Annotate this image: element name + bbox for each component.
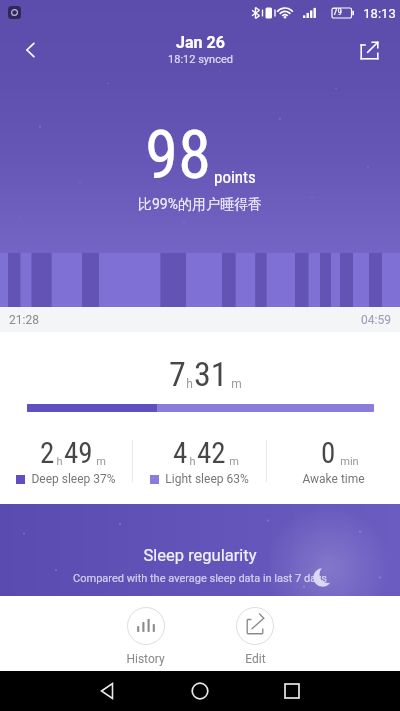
button[interactable]: View history bbox=[118, 605, 173, 668]
staticText: 18:12 synced bbox=[168, 53, 233, 66]
button[interactable]: Recents bbox=[272, 671, 312, 711]
button[interactable]: Back bbox=[88, 671, 128, 711]
staticText: 比99%的用户睡得香 bbox=[138, 196, 262, 214]
staticText: 7 bbox=[169, 354, 186, 394]
staticText: Compared with the average sleep data in … bbox=[73, 572, 327, 585]
button[interactable]: Sleep regularity bbox=[0, 504, 400, 596]
staticText: h bbox=[189, 455, 196, 468]
staticText: points bbox=[214, 167, 256, 187]
staticText: 31 bbox=[194, 354, 228, 394]
staticText: Jan 26 bbox=[176, 33, 225, 52]
staticText: 98 bbox=[145, 116, 212, 195]
staticText: m bbox=[96, 455, 106, 468]
staticText: History bbox=[126, 652, 165, 666]
staticText: m bbox=[231, 377, 242, 391]
staticText: 49 bbox=[64, 436, 93, 470]
staticText: 18:13 bbox=[363, 6, 396, 21]
staticText: Edit bbox=[245, 652, 266, 666]
staticText: 21:28 bbox=[9, 313, 39, 327]
staticText: 04:59 bbox=[361, 313, 391, 327]
button[interactable]: Back bbox=[8, 27, 54, 73]
button[interactable]: Share bbox=[346, 27, 392, 73]
staticText: h bbox=[56, 455, 63, 468]
staticText: 2 bbox=[40, 436, 55, 470]
staticText: 4 bbox=[173, 436, 188, 470]
button[interactable]: Home bbox=[180, 671, 220, 711]
staticText: Light sleep 63% bbox=[165, 472, 249, 486]
staticText: h bbox=[186, 377, 193, 391]
staticText: Awake time bbox=[302, 472, 365, 486]
button[interactable]: Edit bbox=[228, 605, 282, 668]
staticText: Sleep regularity bbox=[143, 546, 257, 565]
staticText: Deep sleep 37% bbox=[31, 472, 116, 486]
staticText: 42 bbox=[197, 436, 226, 470]
staticText: m bbox=[229, 455, 239, 468]
staticText: 79 bbox=[333, 7, 342, 18]
staticText: 0 bbox=[321, 436, 336, 470]
staticText: min bbox=[340, 455, 359, 468]
